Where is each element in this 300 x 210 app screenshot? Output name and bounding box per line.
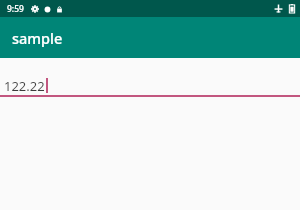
staticText: 9:59 [7,3,24,15]
button[interactable]: sample [0,17,300,58]
button[interactable]: Number input field [0,77,300,97]
staticText: 122.22 [4,77,45,94]
staticText: sample [12,28,63,48]
